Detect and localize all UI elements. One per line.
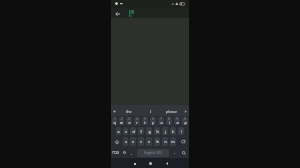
staticText: b	[156, 139, 159, 144]
staticText: q	[113, 120, 116, 125]
button[interactable]: 2	[119, 117, 124, 125]
staticText: w	[120, 120, 123, 125]
button[interactable]: 1	[112, 117, 117, 125]
staticText: p	[184, 120, 187, 125]
button[interactable]: English (US)	[137, 149, 169, 157]
button[interactable]: Shift	[111, 136, 122, 147]
button[interactable]: ?123	[111, 147, 120, 158]
button[interactable]: b	[154, 137, 160, 146]
staticText: .	[174, 150, 176, 155]
staticText: c	[140, 139, 142, 144]
staticText: 4	[136, 117, 138, 121]
staticText: ?123	[112, 151, 119, 155]
staticText: r	[136, 120, 138, 125]
button[interactable]: m	[170, 137, 176, 146]
staticText: m	[171, 139, 175, 144]
staticText: y	[152, 120, 154, 125]
staticText: the	[126, 109, 132, 114]
button[interactable]: f	[138, 127, 144, 135]
staticText: x	[132, 139, 134, 144]
button[interactable]: s	[123, 127, 128, 135]
staticText: a	[117, 129, 120, 134]
button[interactable]: 3	[126, 117, 132, 125]
button[interactable]: Navigate up	[113, 9, 122, 18]
button[interactable]: Emoji	[120, 147, 128, 158]
staticText: v	[148, 139, 150, 144]
staticText: English (US)	[144, 151, 162, 155]
staticText: 3	[128, 117, 130, 121]
button[interactable]: l	[178, 127, 184, 135]
staticText: e	[128, 120, 131, 125]
button[interactable]: g	[146, 127, 152, 135]
button[interactable]: Backspace	[177, 136, 189, 147]
staticText: 5	[144, 117, 146, 121]
button[interactable]: More options	[111, 105, 118, 116]
button[interactable]: I	[140, 105, 161, 116]
staticText: d	[132, 129, 135, 134]
button[interactable]: 8	[166, 117, 172, 125]
staticText: l	[181, 129, 182, 134]
staticText: j	[165, 129, 166, 134]
staticText: I	[150, 109, 152, 114]
button[interactable]: Recent apps	[130, 159, 139, 168]
button[interactable]: k	[170, 127, 176, 135]
button[interactable]: a	[116, 127, 121, 135]
button[interactable]: Back	[162, 159, 171, 168]
button[interactable]: n	[162, 137, 168, 146]
button[interactable]: .	[170, 147, 179, 158]
button[interactable]: z	[123, 137, 128, 146]
button[interactable]: 5	[142, 117, 148, 125]
staticText: ,	[131, 150, 133, 155]
button[interactable]: 6	[150, 117, 156, 125]
staticText: f	[140, 129, 142, 134]
staticText: i	[169, 120, 170, 125]
staticText: 0	[184, 117, 186, 121]
button[interactable]: Expand suggestions	[182, 105, 189, 116]
staticText: 1	[114, 117, 116, 121]
staticText: please	[166, 109, 177, 114]
staticText: o	[176, 120, 179, 125]
button[interactable]: please	[161, 105, 182, 116]
button[interactable]: Home	[146, 159, 155, 168]
button[interactable]: 4	[134, 117, 140, 125]
staticText: 8	[168, 117, 170, 121]
button[interactable]: x	[130, 137, 136, 146]
button[interactable]: 9	[174, 117, 180, 125]
staticText: n	[164, 139, 167, 144]
staticText: s	[125, 129, 127, 134]
staticText: 6	[152, 117, 154, 121]
button[interactable]: d	[130, 127, 136, 135]
staticText: 7	[160, 117, 162, 121]
button[interactable]: 7	[158, 117, 164, 125]
button[interactable]: the	[118, 105, 140, 116]
staticText: 9	[176, 117, 178, 121]
staticText: k	[172, 129, 174, 134]
staticText: 2	[121, 117, 123, 121]
staticText: h	[156, 129, 159, 134]
staticText: u	[160, 120, 163, 125]
button[interactable]: 0	[182, 117, 188, 125]
staticText: z	[125, 139, 127, 144]
button[interactable]: h	[154, 127, 160, 135]
staticText: g	[148, 129, 151, 134]
button[interactable]: ,	[128, 147, 136, 158]
button[interactable]: c	[138, 137, 144, 146]
staticText: t	[144, 120, 146, 125]
button[interactable]: v	[146, 137, 152, 146]
button[interactable]: Search	[179, 147, 189, 158]
button[interactable]: j	[162, 127, 168, 135]
